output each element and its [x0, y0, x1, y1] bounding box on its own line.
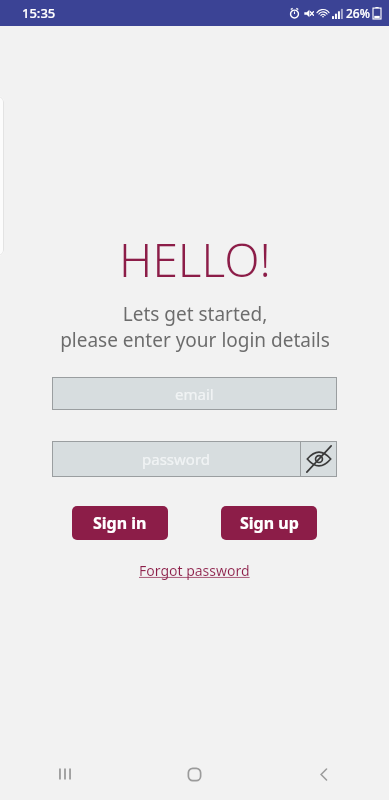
- staticText: Sign in: [93, 512, 147, 534]
- staticText: 15:35: [22, 4, 56, 22]
- button[interactable]: Sign in: [72, 506, 168, 540]
- staticText: HELLO!: [119, 228, 271, 291]
- staticText: Forgot password: [139, 561, 250, 580]
- button[interactable]: Show password: [300, 441, 337, 477]
- staticText: 26%: [346, 5, 370, 21]
- staticText: password: [142, 449, 210, 469]
- button[interactable]: Home: [129, 748, 259, 800]
- staticText: email: [175, 384, 214, 404]
- staticText: Lets get started, please enter your logi…: [60, 301, 330, 353]
- staticText: Sign up: [240, 512, 299, 534]
- button[interactable]: Recents: [0, 748, 129, 800]
- button[interactable]: Forgot password: [133, 555, 256, 586]
- button[interactable]: email: [52, 377, 337, 410]
- button[interactable]: password: [52, 441, 300, 477]
- button[interactable]: Sign up: [221, 506, 317, 540]
- button[interactable]: Back: [259, 748, 389, 800]
